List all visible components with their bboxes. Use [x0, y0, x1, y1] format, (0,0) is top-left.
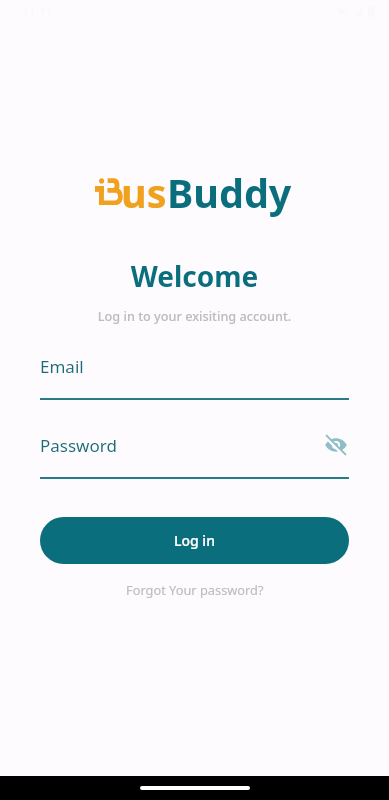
button[interactable]: Forgot Your password?	[120, 579, 270, 600]
staticText: Log in	[174, 531, 215, 550]
staticText: Password	[40, 434, 117, 457]
staticText: Email	[40, 355, 84, 378]
staticText: us	[121, 166, 167, 220]
button[interactable]: Show password	[323, 432, 349, 458]
staticText: Forgot Your password?	[126, 581, 264, 598]
staticText: Log in to your exisiting account.	[0, 307, 389, 324]
staticText: Buddy	[167, 166, 292, 220]
button[interactable]: Log in	[40, 517, 349, 564]
staticText: Welcome	[0, 257, 389, 295]
